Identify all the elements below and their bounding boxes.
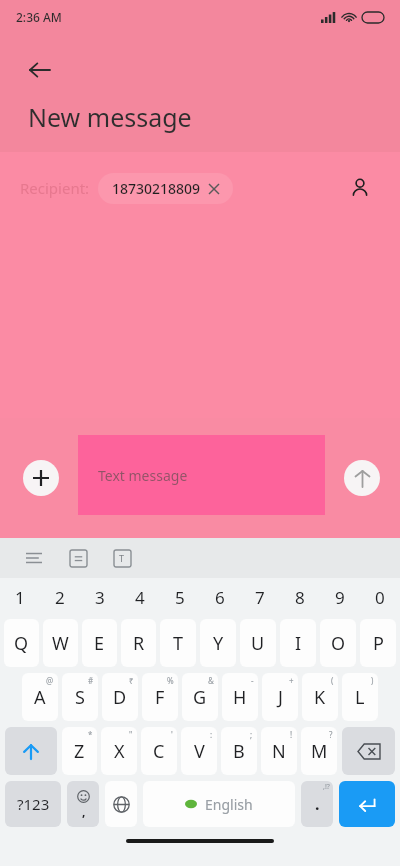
button[interactable]: L: [342, 673, 378, 721]
staticText: Recipient:: [20, 178, 90, 198]
staticText: 7: [255, 586, 265, 609]
staticText: V: [194, 739, 205, 764]
staticText: D: [113, 685, 127, 710]
staticText: ?: [329, 729, 333, 740]
button[interactable]: Enter: [339, 781, 395, 827]
button[interactable]: J: [262, 673, 298, 721]
button[interactable]: Change language: [105, 781, 137, 827]
button[interactable]: M: [301, 727, 337, 775]
staticText: 2:36 AM: [16, 9, 62, 25]
button[interactable]: .: [301, 781, 333, 827]
button[interactable]: S: [62, 673, 98, 721]
button[interactable]: P: [360, 619, 396, 667]
staticText: L: [355, 685, 365, 710]
button[interactable]: Shift: [5, 727, 57, 775]
staticText: ,!?: [323, 782, 330, 792]
staticText: ?123: [17, 794, 50, 814]
staticText: 18730218809: [112, 179, 201, 198]
button[interactable]: T: [160, 619, 196, 667]
staticText: *: [88, 729, 93, 740]
staticText: English: [205, 795, 253, 814]
staticText: ): [371, 675, 374, 686]
staticText: +: [289, 675, 294, 686]
button[interactable]: Z: [62, 727, 97, 775]
button[interactable]: H: [222, 673, 258, 721]
button[interactable]: 18730218809: [98, 173, 233, 204]
staticText: F: [155, 685, 165, 710]
staticText: 0: [375, 586, 385, 609]
button[interactable]: K: [302, 673, 338, 721]
button[interactable]: D: [102, 673, 138, 721]
staticText: 8: [295, 586, 305, 609]
button[interactable]: B: [221, 727, 257, 775]
staticText: ,: [82, 803, 86, 819]
staticText: B: [233, 739, 245, 764]
button[interactable]: Menu: [20, 544, 48, 572]
staticText: 5: [175, 586, 185, 609]
button[interactable]: Back: [20, 50, 60, 90]
button[interactable]: 5: [160, 578, 200, 616]
staticText: 9: [335, 586, 345, 609]
staticText: H: [233, 685, 247, 710]
button[interactable]: Emoji: [67, 781, 99, 827]
staticText: ₹: [129, 675, 134, 686]
staticText: (: [331, 675, 334, 686]
staticText: R: [133, 631, 145, 656]
button[interactable]: O: [320, 619, 356, 667]
button[interactable]: W: [43, 619, 78, 667]
button[interactable]: 4: [120, 578, 160, 616]
staticText: E: [94, 631, 105, 656]
staticText: U: [251, 631, 265, 656]
button[interactable]: 1: [0, 578, 40, 616]
button[interactable]: 7: [240, 578, 280, 616]
staticText: N: [272, 739, 286, 764]
staticText: 2: [55, 586, 65, 609]
staticText: ': [171, 729, 173, 740]
button[interactable]: N: [261, 727, 297, 775]
staticText: Y: [213, 631, 224, 656]
staticText: Z: [74, 739, 85, 764]
button[interactable]: Q: [4, 619, 39, 667]
button[interactable]: Send: [344, 460, 380, 496]
button[interactable]: 9: [320, 578, 360, 616]
staticText: -: [251, 675, 254, 686]
button[interactable]: E: [82, 619, 117, 667]
button[interactable]: Add attachment: [23, 460, 59, 496]
button[interactable]: A: [22, 673, 58, 721]
button[interactable]: Contacts: [340, 168, 380, 208]
button[interactable]: ?123: [5, 781, 61, 827]
staticText: ": [129, 729, 133, 740]
staticText: W: [52, 631, 69, 656]
button[interactable]: 3: [80, 578, 120, 616]
staticText: New message: [28, 100, 192, 134]
button[interactable]: English: [143, 781, 295, 827]
button[interactable]: X: [101, 727, 137, 775]
button[interactable]: Backspace: [342, 727, 395, 775]
staticText: 1: [15, 586, 25, 609]
staticText: G: [193, 685, 207, 710]
staticText: K: [314, 685, 326, 710]
button[interactable]: C: [141, 727, 177, 775]
button[interactable]: Text style: [108, 544, 136, 572]
staticText: J: [278, 685, 283, 710]
staticText: X: [114, 739, 125, 764]
button[interactable]: 8: [280, 578, 320, 616]
staticText: C: [153, 739, 165, 764]
button[interactable]: Clipboard: [64, 544, 92, 572]
staticText: 3: [95, 586, 105, 609]
button[interactable]: U: [240, 619, 276, 667]
staticText: Q: [14, 631, 29, 656]
button[interactable]: 2: [40, 578, 80, 616]
button[interactable]: Text message: [78, 435, 325, 515]
staticText: S: [75, 685, 85, 710]
button[interactable]: F: [142, 673, 178, 721]
button[interactable]: 6: [200, 578, 240, 616]
staticText: @: [46, 675, 54, 686]
button[interactable]: Y: [200, 619, 236, 667]
button[interactable]: 0: [360, 578, 400, 616]
staticText: T: [173, 631, 184, 656]
button[interactable]: G: [182, 673, 218, 721]
button[interactable]: R: [121, 619, 156, 667]
button[interactable]: I: [280, 619, 316, 667]
button[interactable]: V: [181, 727, 217, 775]
